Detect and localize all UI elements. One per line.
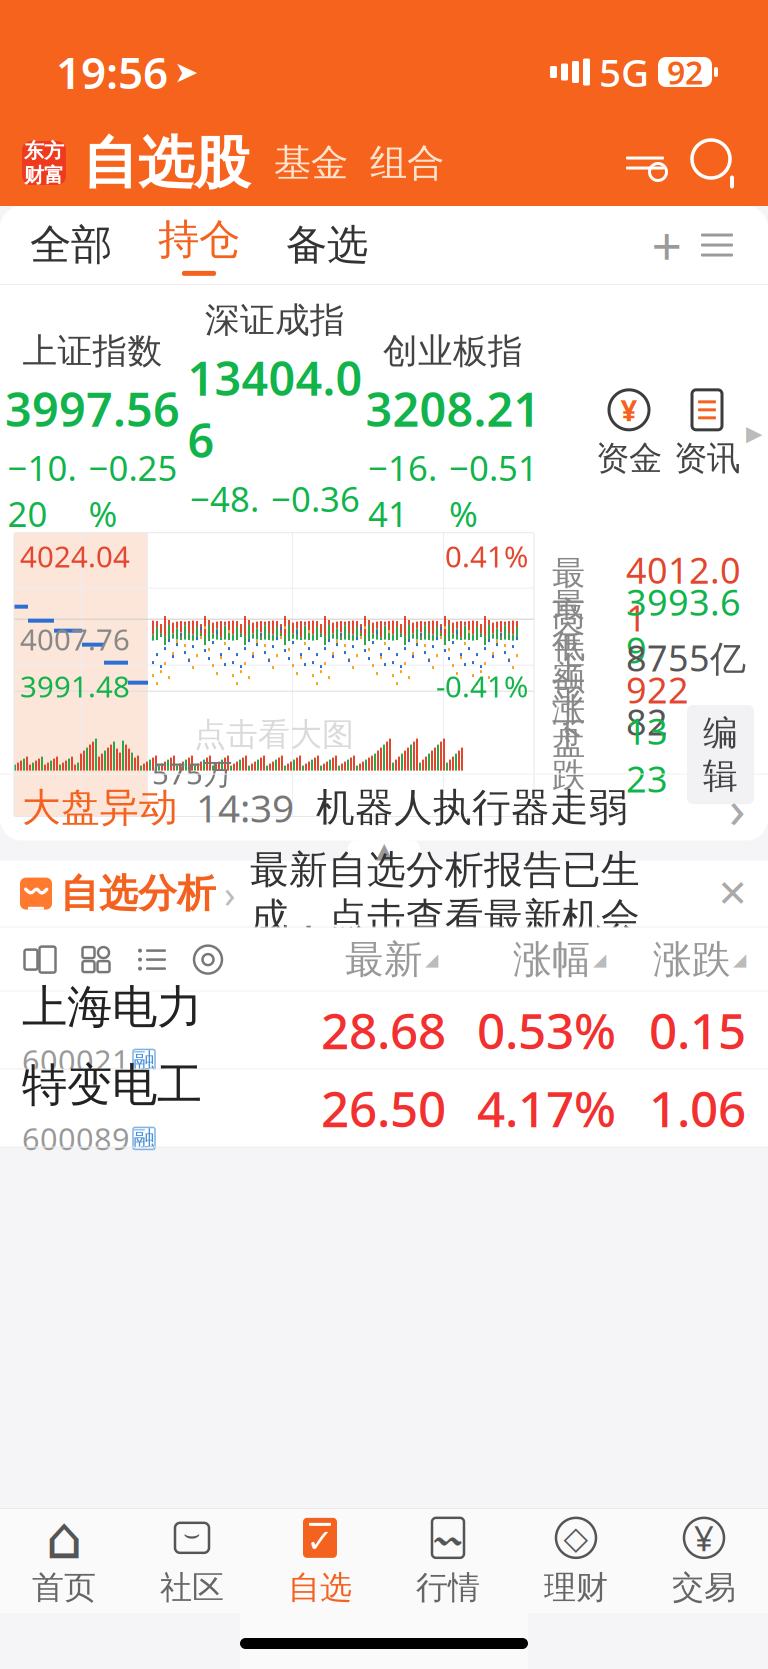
button[interactable]: ◇ [512,1509,640,1613]
staticText: ⌂ [45,1505,82,1571]
button[interactable]: 4024.04 [14,533,534,816]
staticText: 3991.48 [20,667,130,706]
button[interactable]: 设置 [174,938,230,982]
button[interactable]: 〰 [0,861,768,927]
staticText: ◢ [425,950,438,969]
staticText: 1.06 [649,1075,746,1141]
staticText: ✕ [717,872,748,915]
button[interactable]: 添加 [642,220,692,270]
staticText: ➤ [174,55,199,89]
staticText: 平盘 [552,681,585,763]
staticText: 4.17% [477,1075,616,1141]
button[interactable]: 列表 [118,938,174,982]
button[interactable]: 自选股 [66,129,250,197]
staticText: ✓ [306,1523,333,1559]
staticText: 13404.06 [187,347,362,470]
button[interactable]: 涨幅 [448,936,616,983]
button[interactable]: 视图1 [18,938,62,982]
staticText: 1323 [626,707,668,802]
staticText: 5G [599,46,649,98]
staticText: 创业板指 [383,330,523,373]
button[interactable]: ⌂ [0,1509,128,1613]
staticText: 0.15 [649,997,746,1063]
button[interactable]: 编辑 [687,705,754,804]
button[interactable]: ⌣ [128,1509,256,1613]
staticText: 上证指数 [22,330,162,373]
staticText: 理财 [544,1568,608,1607]
staticText: 3208.21 [365,378,540,440]
staticText: 最新自选分析报告已生成，点击查看最新机会 [250,846,640,941]
button[interactable]: ¥ [590,388,668,479]
staticText: 深证成指 [205,299,345,342]
staticText: › [729,772,746,843]
staticText: 92 [667,51,703,93]
button[interactable]: 收起 [348,841,420,861]
button[interactable]: 〰 [384,1509,512,1613]
staticText: 575万 [152,754,232,793]
staticText: ▲ [375,838,392,863]
staticText: −0.51% [449,444,538,537]
staticText: 备选 [286,220,368,270]
staticText: 交易 [672,1568,736,1607]
button[interactable]: ¥ [640,1509,768,1613]
staticText: 最低 [552,585,585,667]
button[interactable]: 基金 [250,140,348,186]
button[interactable]: 深证成指 [185,299,365,568]
staticText: 4024.04 [20,537,130,576]
button[interactable]: 全部 [0,206,120,284]
staticText: ▶ [746,421,762,445]
button[interactable]: 设置 [618,136,672,190]
button[interactable]: 涨跌 [616,936,756,983]
button[interactable]: 大盘异动 [0,775,768,841]
staticText: 编辑 [703,712,738,797]
button[interactable]: 搜索 [672,136,742,190]
staticText: −0.25% [88,444,177,537]
staticText: 8755亿 [626,634,746,681]
staticText: 首页 [32,1568,96,1607]
staticText: + [651,210,682,280]
button[interactable]: 上海电力 [0,992,768,1069]
staticText: 金额 [552,617,585,699]
staticText: 持仓 [158,214,240,265]
button[interactable]: 最新 [288,936,448,983]
button[interactable]: 备选 [248,206,376,284]
button[interactable]: 创业板指 [365,330,541,537]
staticText: › [224,869,236,918]
button[interactable]: 上证指数 [0,330,185,537]
staticText: 3997.56 [5,378,180,440]
button[interactable]: 视图2 [62,938,118,982]
staticText: 东方 财富 [24,138,64,187]
staticText: 4007.76 [20,620,130,659]
staticText: 资讯 [674,438,740,479]
staticText: 自选分析 [60,870,216,917]
staticText: 自选股 [82,129,250,197]
button[interactable]: 特变电工 [0,1070,768,1147]
staticText: ◢ [593,950,606,969]
button[interactable]: 组合 [348,140,444,186]
button[interactable]: ✓ [256,1509,384,1613]
staticText: −48.36 [190,475,259,568]
button[interactable]: 菜单 [692,220,768,270]
staticText: 82 [626,698,668,745]
staticText: 涨跌 [653,936,731,983]
staticText: 〰 [21,877,51,905]
staticText: 大盘异动 [22,784,178,831]
staticText: ◇ [563,1520,588,1556]
staticText: 〰 [434,1519,461,1557]
staticText: 0.41% [445,537,528,576]
staticText: 下跌 [552,714,585,796]
staticText: ¥ [694,1515,714,1561]
staticText: 机器人执行器走弱 [316,784,628,831]
staticText: 融 [133,1047,154,1073]
staticText: 28.68 [321,997,446,1063]
staticText: 600021 [22,1040,130,1081]
staticText: −16.41 [368,444,437,537]
button[interactable]: 资讯 [668,388,746,479]
staticText: 最高 [552,553,585,635]
staticText: 组合 [370,140,444,186]
staticText: −10.20 [7,444,76,537]
staticText: 4012.01 [626,546,741,641]
staticText: 上涨 [552,649,585,731]
button[interactable]: 持仓 [120,206,248,284]
staticText: 资金 [596,438,662,479]
